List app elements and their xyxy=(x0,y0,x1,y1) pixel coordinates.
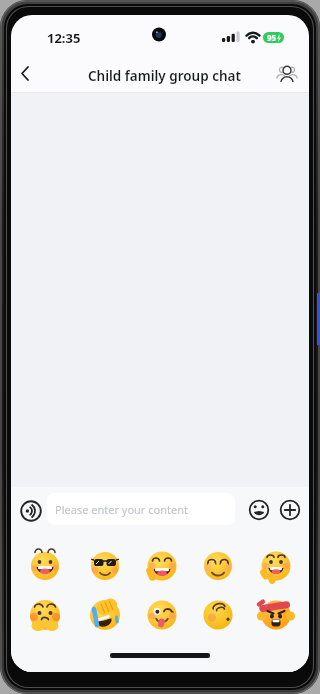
button[interactable] xyxy=(243,494,275,526)
staticText: Child family group chat xyxy=(88,67,241,85)
button[interactable] xyxy=(23,593,67,637)
button[interactable] xyxy=(270,58,304,92)
button[interactable]: Please enter your content xyxy=(47,493,235,525)
button[interactable] xyxy=(254,544,298,588)
button[interactable] xyxy=(83,593,127,637)
button[interactable] xyxy=(11,59,45,93)
button[interactable] xyxy=(140,544,184,588)
button[interactable] xyxy=(83,544,127,588)
button[interactable] xyxy=(196,544,240,588)
staticText: 12:35 xyxy=(47,29,81,47)
button[interactable] xyxy=(254,593,298,637)
button[interactable] xyxy=(15,495,47,527)
staticText: Please enter your content xyxy=(55,502,188,517)
staticText: 95 xyxy=(267,32,277,43)
button[interactable] xyxy=(196,593,240,637)
button[interactable] xyxy=(140,593,184,637)
button[interactable] xyxy=(23,544,67,588)
button[interactable] xyxy=(274,494,306,526)
